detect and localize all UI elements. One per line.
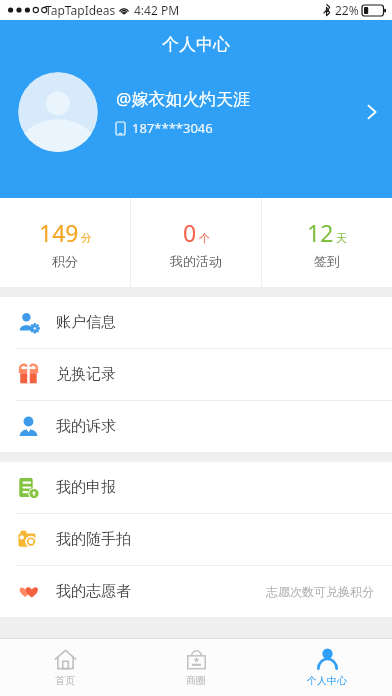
button[interactable]: 我的申报 — [0, 462, 392, 514]
staticText: 我的申报 — [56, 478, 116, 497]
staticText: 149 — [39, 217, 79, 248]
staticText: TapTapIdeas — [45, 2, 116, 18]
staticText: 我的随手拍 — [56, 530, 131, 549]
staticText: 我的诉求 — [56, 417, 116, 436]
button[interactable]: 我的志愿者 — [0, 566, 392, 617]
button[interactable]: 商圈 — [136, 639, 256, 696]
staticText: 分 — [81, 231, 92, 245]
button[interactable]: 0 — [131, 203, 261, 283]
button[interactable]: 账户信息 — [0, 297, 392, 349]
staticText: 0 — [183, 217, 197, 248]
staticText: 首页 — [55, 674, 75, 687]
staticText: 22% — [335, 2, 359, 18]
staticText: 天 — [336, 231, 347, 245]
staticText: 账户信息 — [56, 313, 116, 332]
button[interactable]: 149 — [0, 203, 130, 283]
staticText: 签到 — [314, 253, 340, 269]
button[interactable]: 首页 — [5, 639, 125, 696]
button[interactable]: 我的随手拍 — [0, 514, 392, 566]
staticText: 4:42 PM — [134, 2, 180, 18]
staticText: 志愿次数可兑换积分 — [266, 584, 374, 599]
button[interactable]: 我的诉求 — [0, 401, 392, 452]
staticText: 个人中心 — [307, 674, 347, 687]
staticText: 12 — [307, 217, 334, 248]
button[interactable]: @嫁衣如火灼天涯 — [18, 72, 378, 152]
staticText: 我的志愿者 — [56, 582, 131, 601]
button[interactable]: 个人中心 — [267, 639, 387, 696]
staticText: 积分 — [52, 253, 78, 269]
staticText: 兑换记录 — [56, 365, 116, 384]
staticText: 187****3046 — [132, 119, 213, 137]
staticText: 商圈 — [186, 674, 206, 687]
button[interactable]: 12 — [262, 203, 392, 283]
button[interactable]: 兑换记录 — [0, 349, 392, 401]
staticText: 个 — [199, 231, 210, 245]
staticText: @嫁衣如火灼天涯 — [116, 87, 251, 110]
staticText: 我的活动 — [170, 253, 222, 269]
staticText: 个人中心 — [162, 34, 230, 55]
